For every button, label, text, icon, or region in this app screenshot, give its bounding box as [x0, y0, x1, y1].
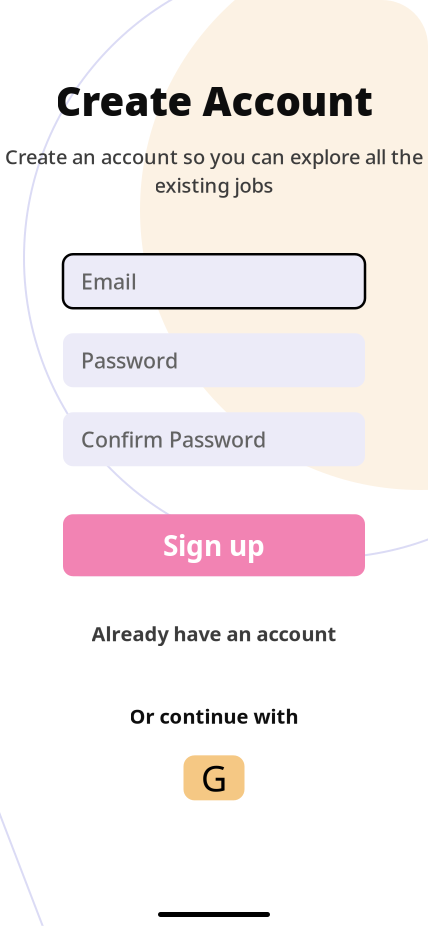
staticText: Confirm Password: [81, 425, 266, 453]
staticText: Create an account so you can explore all…: [5, 143, 423, 170]
staticText: existing jobs: [154, 172, 273, 198]
staticText: G: [201, 754, 227, 802]
button[interactable]: Email: [63, 254, 365, 308]
button[interactable]: Sign up: [63, 514, 365, 576]
staticText: Email: [81, 267, 137, 295]
staticText: Or continue with: [129, 703, 298, 729]
button[interactable]: Already have an account: [81, 614, 346, 653]
button[interactable]: Password: [63, 333, 365, 387]
button[interactable]: Confirm Password: [63, 412, 365, 466]
staticText: Password: [81, 346, 178, 374]
staticText: Sign up: [163, 527, 265, 564]
staticText: Already have an account: [91, 620, 336, 647]
staticText: Create Account: [55, 74, 372, 127]
button[interactable]: Continue with Google: [183, 755, 244, 800]
